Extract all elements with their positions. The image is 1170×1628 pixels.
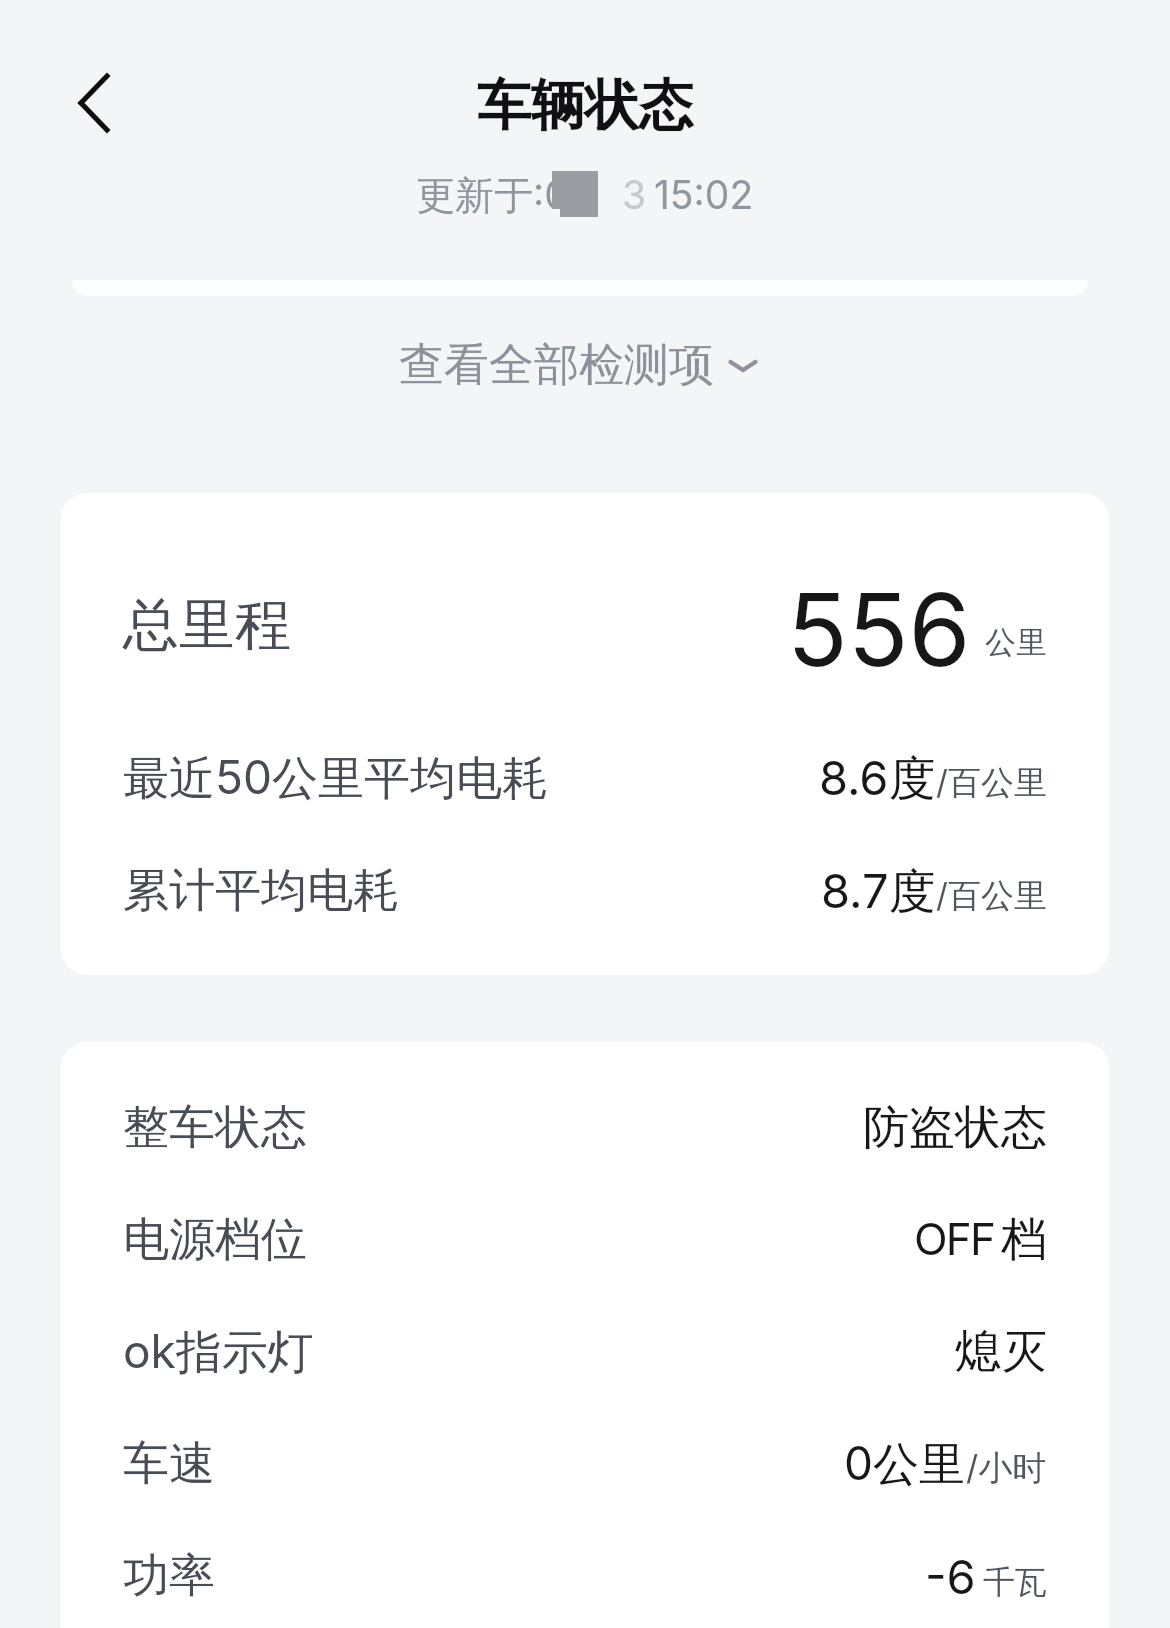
staticText: 电源档位 xyxy=(123,1211,307,1269)
button[interactable]: Back xyxy=(46,47,156,157)
staticText: 15:02 xyxy=(654,171,754,218)
staticText: 最近50公里平均电耗 xyxy=(123,749,548,807)
staticText: 8.6度 xyxy=(819,749,936,808)
staticText: 查看全部检测项 xyxy=(399,337,714,394)
staticText: 千瓦 xyxy=(983,1562,1047,1602)
staticText: /百公里 xyxy=(936,762,1047,804)
staticText: 8.7度 xyxy=(821,862,936,921)
staticText: 车辆状态 xyxy=(477,72,693,140)
button[interactable]: 车速 xyxy=(61,1408,1109,1520)
staticText: 公里 xyxy=(985,623,1047,662)
staticText: 累计平均电耗 xyxy=(123,862,399,920)
button[interactable]: 查看全部检测项 xyxy=(383,329,774,402)
staticText: 整车状态 xyxy=(123,1099,307,1157)
staticText: 总里程 xyxy=(123,590,291,661)
staticText: 防盗状态 xyxy=(863,1099,1047,1157)
button[interactable]: 整车状态 xyxy=(61,1072,1109,1184)
staticText: 3 xyxy=(622,171,647,218)
staticText: 556 xyxy=(787,569,971,681)
staticText: 功率 xyxy=(123,1547,215,1605)
staticText: -6 xyxy=(925,1548,976,1605)
button[interactable]: 累计平均电耗 xyxy=(61,835,1109,947)
button[interactable]: 电源档位 xyxy=(61,1184,1109,1296)
staticText: 车速 xyxy=(123,1435,215,1493)
button[interactable]: 总里程 xyxy=(61,569,1109,681)
staticText: /小时 xyxy=(966,1447,1047,1490)
staticText: ok指示灯 xyxy=(123,1323,314,1381)
button[interactable]: 功率 xyxy=(61,1520,1109,1628)
staticText: OFF xyxy=(914,1212,995,1265)
staticText: 0公里 xyxy=(844,1435,966,1493)
staticText: /百公里 xyxy=(936,875,1047,917)
staticText: 熄灭 xyxy=(955,1323,1047,1381)
staticText: 更新于:0 xyxy=(416,171,569,220)
staticText: 档 xyxy=(1001,1211,1047,1269)
button[interactable]: ok指示灯 xyxy=(61,1296,1109,1408)
button[interactable]: 最近50公里平均电耗 xyxy=(61,722,1109,834)
